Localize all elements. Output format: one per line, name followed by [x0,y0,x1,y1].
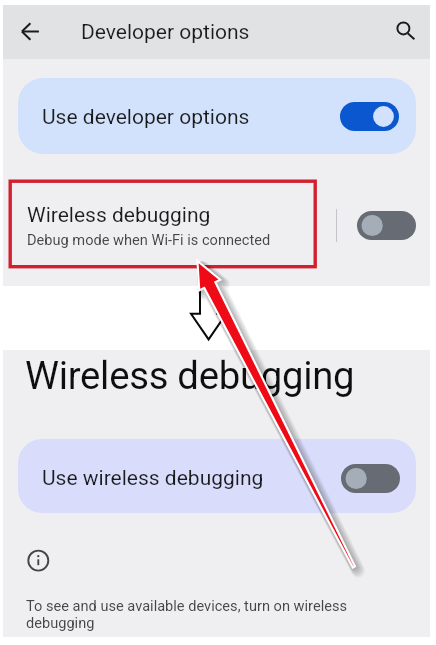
staticText: Use developer options [42,105,250,130]
button[interactable]: Search [388,9,424,45]
staticText: Developer options [81,20,250,45]
staticText: Wireless debugging [25,353,355,398]
button[interactable]: Information [25,547,52,574]
staticText: Wireless debugging [27,203,211,228]
button[interactable]: Use developer options [18,78,416,154]
staticText: Use wireless debugging [42,466,264,491]
button[interactable]: Back [12,9,48,45]
button[interactable]: Use wireless debugging [18,439,416,513]
button[interactable]: Wireless debugging [3,187,430,263]
staticText: Debug mode when Wi-Fi is connected [27,231,271,248]
staticText: To see and use available devices, turn o… [26,597,366,631]
